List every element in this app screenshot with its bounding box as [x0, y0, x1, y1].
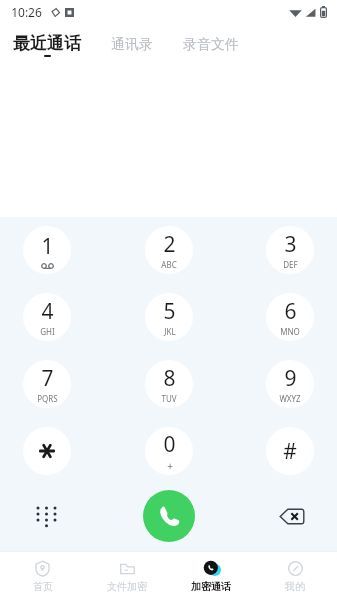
staticText: JKL [164, 326, 176, 337]
button[interactable]: Backspace [269, 493, 315, 539]
staticText: 通讯录 [111, 36, 153, 54]
staticText: 10:26 [11, 4, 42, 20]
button[interactable]: 1 [23, 226, 71, 274]
staticText: 5 [163, 297, 176, 326]
button[interactable]: 通讯录 [109, 30, 155, 60]
staticText: 4 [41, 297, 54, 326]
staticText: TUV [161, 393, 177, 404]
staticText: WXYZ [279, 393, 301, 404]
button[interactable]: 3 [266, 226, 314, 274]
staticText: 1 [41, 232, 54, 261]
staticText: 首页 [33, 580, 53, 593]
staticText: 录音文件 [183, 36, 239, 54]
button[interactable]: 录音文件 [181, 30, 241, 60]
button[interactable]: 文件加密 [85, 552, 169, 600]
button[interactable]: # [266, 427, 314, 475]
staticText: 0 [163, 430, 176, 459]
staticText: + [167, 459, 173, 473]
staticText: 我的 [285, 580, 305, 593]
button[interactable]: 我的 [253, 552, 337, 600]
staticText: 3 [284, 230, 297, 259]
button[interactable] [23, 427, 71, 475]
staticText: 6 [284, 297, 297, 326]
staticText: # [283, 437, 297, 466]
button[interactable]: Call [143, 490, 195, 542]
staticText: 9 [284, 364, 297, 393]
staticText: PQRS [37, 393, 58, 404]
staticText: 加密通话 [191, 580, 231, 593]
staticText: 2 [163, 230, 176, 259]
staticText: 8 [163, 364, 176, 393]
button[interactable]: 6 [266, 293, 314, 341]
staticText: DEF [283, 259, 298, 270]
staticText: ABC [161, 259, 177, 270]
button[interactable]: 9 [266, 360, 314, 408]
staticText: MNO [280, 326, 300, 337]
staticText: GHI [40, 326, 55, 337]
staticText: 最近通话 [13, 33, 81, 54]
button[interactable]: 7 [23, 360, 71, 408]
staticText: 文件加密 [107, 580, 147, 593]
button[interactable]: 2 [145, 226, 193, 274]
button[interactable]: 首页 [0, 552, 85, 600]
button[interactable]: Keypad [23, 493, 69, 539]
staticText: 7 [41, 364, 54, 393]
button[interactable]: 0 [145, 427, 193, 475]
button[interactable]: 加密通话 [169, 552, 253, 600]
button[interactable]: 5 [145, 293, 193, 341]
button[interactable]: 4 [23, 293, 71, 341]
button[interactable]: 8 [145, 360, 193, 408]
button[interactable]: 最近通话 [11, 33, 83, 57]
